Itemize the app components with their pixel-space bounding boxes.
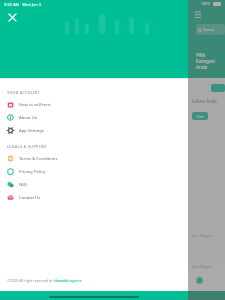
staticText: ©2020 All right reserved to — [7, 278, 54, 283]
button[interactable]: Cari — [192, 112, 208, 120]
button[interactable]: App Settings — [0, 124, 188, 137]
staticText: Pilih Kategori Anda — [196, 52, 225, 70]
staticText: Contact Us — [19, 195, 41, 201]
staticText: YOUR ACCOUNT — [7, 90, 40, 95]
staticText: Privacy Policy — [19, 169, 46, 175]
staticText: How to sell/rent — [19, 102, 51, 108]
staticText: Terms & Conditions — [19, 156, 58, 162]
staticText: About Us — [19, 115, 38, 121]
staticText: Cari Propert — [192, 264, 213, 269]
staticText: Homebit — [54, 278, 69, 283]
button[interactable]: Terms & Conditions — [0, 152, 188, 165]
button[interactable]: About Us — [0, 111, 188, 124]
staticText: 100% — [201, 1, 211, 6]
staticText: Lokasi Anda — [192, 98, 217, 104]
staticText: Cari Propert — [192, 233, 213, 238]
button[interactable]: Open menu — [193, 10, 203, 20]
staticText: 9:30 AM Wed Jun 3 — [4, 2, 42, 7]
button[interactable]: FAQ — [0, 178, 188, 191]
staticText: App Settings — [19, 128, 44, 134]
staticText: FAQ — [19, 182, 27, 188]
staticText: LEGALS & SUPPORT — [7, 144, 48, 149]
staticText: Cari — [197, 114, 204, 119]
button[interactable]: Privacy Policy — [0, 165, 188, 178]
staticText: Search — [203, 27, 214, 32]
button[interactable] — [211, 84, 225, 92]
button[interactable]: Close navigation drawer — [5, 10, 19, 24]
button[interactable]: Contact Us — [0, 191, 188, 204]
staticText: agents — [69, 278, 82, 283]
button[interactable]: Search — [196, 24, 225, 35]
button[interactable]: How to sell/rent — [0, 98, 188, 111]
